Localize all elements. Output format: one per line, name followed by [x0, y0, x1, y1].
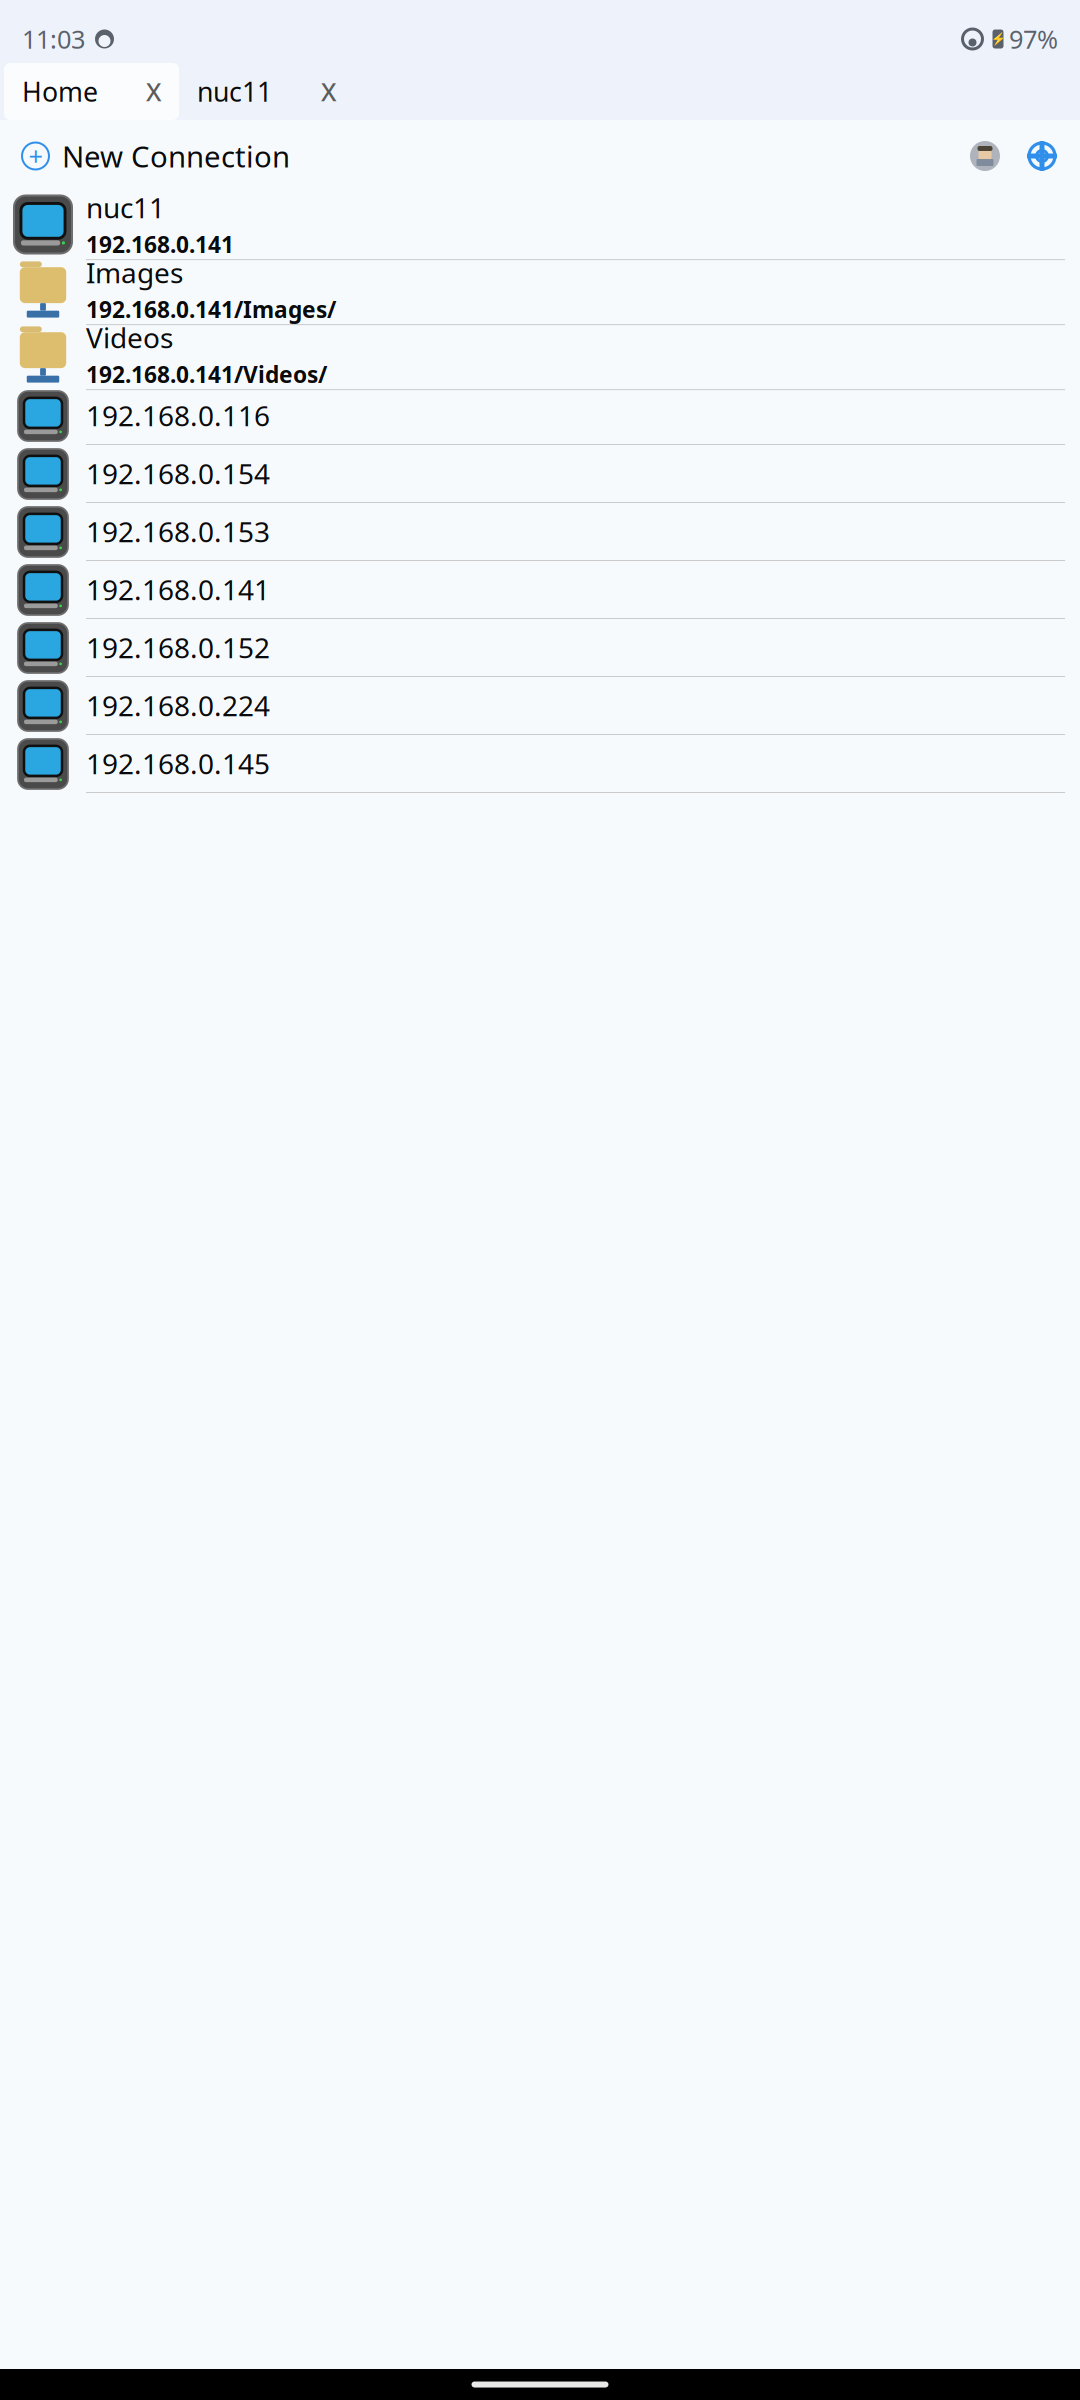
- button[interactable]: 192.168.0.152: [0, 619, 1080, 677]
- staticText: X: [146, 75, 161, 108]
- staticText: 192.168.0.141: [86, 571, 270, 608]
- staticText: +: [28, 139, 42, 173]
- staticText: Images: [86, 254, 183, 291]
- staticText: 11:03: [22, 22, 85, 56]
- button[interactable]: 192.168.0.141: [0, 561, 1080, 619]
- button[interactable]: 192.168.0.154: [0, 445, 1080, 503]
- staticText: Videos: [86, 319, 173, 356]
- button[interactable]: Home: [4, 63, 179, 120]
- button[interactable]: 192.168.0.145: [0, 735, 1080, 793]
- button[interactable]: Settings: [1026, 140, 1058, 172]
- button[interactable]: Account: [970, 141, 1000, 171]
- staticText: nuc11: [197, 74, 272, 109]
- staticText: ⚡: [990, 32, 1005, 46]
- button[interactable]: 192.168.0.224: [0, 677, 1080, 735]
- staticText: 192.168.0.153: [86, 513, 270, 550]
- staticText: nuc11: [86, 189, 165, 226]
- staticText: 192.168.0.141/Videos/: [86, 359, 327, 389]
- button[interactable]: Videos: [0, 322, 1080, 387]
- button[interactable]: Images: [0, 257, 1080, 322]
- button[interactable]: 192.168.0.116: [0, 387, 1080, 445]
- staticText: 192.168.0.141/Images/: [86, 294, 336, 324]
- button[interactable]: nuc11: [179, 63, 354, 120]
- button[interactable]: 192.168.0.153: [0, 503, 1080, 561]
- button[interactable]: +: [22, 136, 290, 175]
- button[interactable]: nuc11: [0, 192, 1080, 257]
- staticText: 192.168.0.154: [86, 455, 270, 492]
- staticText: 192.168.0.145: [86, 745, 270, 782]
- staticText: 192.168.0.141: [86, 229, 234, 259]
- staticText: New Connection: [62, 136, 290, 175]
- staticText: 192.168.0.152: [86, 629, 270, 666]
- staticText: 192.168.0.224: [86, 687, 270, 724]
- staticText: 97%: [1009, 22, 1058, 56]
- staticText: X: [321, 75, 336, 108]
- staticText: Home: [22, 74, 98, 109]
- staticText: 192.168.0.116: [86, 397, 270, 434]
